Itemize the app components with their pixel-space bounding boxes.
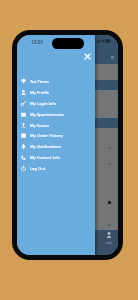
- button[interactable]: Tee Times: [17, 76, 95, 87]
- button[interactable]: My Login Info: [17, 98, 95, 109]
- button[interactable]: Log Out: [17, 163, 95, 174]
- button[interactable]: My Order History: [17, 130, 95, 141]
- button[interactable]: My Scores: [17, 120, 95, 131]
- button[interactable]: My Notifications: [17, 141, 95, 152]
- staticText: My Notifications: [30, 144, 61, 150]
- staticText: My Login Info: [30, 101, 57, 107]
- staticText: My Contact Info: [30, 155, 61, 161]
- staticText: My Profile: [30, 90, 50, 96]
- staticText: Tee Times: [30, 79, 49, 85]
- button[interactable]: Close menu: [80, 49, 94, 63]
- staticText: Log Out: [30, 166, 46, 172]
- staticText: My Order History: [30, 133, 63, 139]
- staticText: 12:00: [31, 39, 43, 45]
- button[interactable]: My Contact Info: [17, 152, 95, 163]
- staticText: My Appointments: [30, 112, 64, 118]
- button[interactable]: My Profile: [17, 87, 95, 98]
- staticText: My Scores: [30, 123, 50, 129]
- button[interactable]: Profile: [103, 231, 114, 245]
- button[interactable]: My Appointments: [17, 109, 95, 120]
